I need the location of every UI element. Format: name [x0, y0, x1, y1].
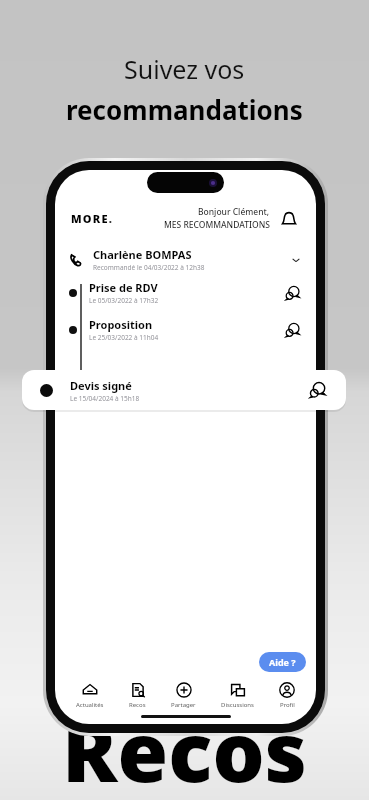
staticText: Prise de RDV	[89, 280, 158, 295]
button[interactable]: Proposition	[55, 317, 316, 342]
staticText: Bonjour Clément,	[198, 206, 270, 218]
button[interactable]: Notifications	[278, 208, 300, 230]
staticText: Recos	[62, 694, 308, 800]
staticText: Charlène BOMPAS	[93, 247, 192, 262]
staticText: Recommandé le 04/03/2022 à 12h38	[93, 263, 205, 272]
button[interactable]: Recos	[125, 680, 150, 711]
staticText: Le 15/04/2024 à 15h18	[70, 394, 140, 403]
button[interactable]: Profil	[275, 680, 299, 711]
button[interactable]: Mission terminée	[55, 386, 316, 400]
staticText: Suivez vos	[124, 52, 245, 86]
button[interactable]: Actualités	[72, 680, 108, 711]
button[interactable]: Charlène BOMPAS	[55, 245, 316, 274]
staticText: Devis signé	[70, 378, 132, 393]
button[interactable]: Discussions	[217, 680, 258, 711]
button[interactable]: Partager	[167, 680, 200, 711]
staticText: Proposition	[89, 317, 153, 332]
button[interactable]: Discussion devis signé	[306, 379, 328, 401]
staticText: Recos	[129, 701, 146, 709]
button[interactable]: Discussion	[282, 320, 302, 340]
button[interactable]: Aide ?	[259, 652, 306, 672]
staticText: Discussions	[221, 701, 254, 709]
staticText: Actualités	[76, 701, 104, 709]
staticText: Mission terminée	[89, 386, 172, 400]
staticText: Le 05/03/2022 à 17h32	[89, 296, 159, 305]
button[interactable]: Discussion	[282, 283, 302, 303]
staticText: Aide ?	[269, 656, 296, 668]
button[interactable]: Devis signé	[22, 370, 346, 410]
staticText: Le 25/03/2022 à 11h04	[89, 333, 159, 342]
staticText: MORE.	[71, 211, 114, 226]
staticText: Partager	[171, 701, 196, 709]
staticText: Profil	[280, 701, 295, 709]
staticText: recommandations	[66, 92, 303, 127]
button[interactable]: Prise de RDV	[55, 280, 316, 305]
staticText: MES RECOMMANDATIONS	[164, 219, 270, 231]
